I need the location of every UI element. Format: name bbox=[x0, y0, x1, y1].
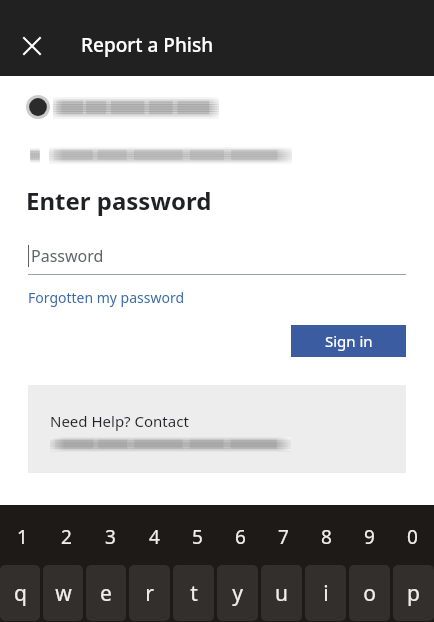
staticText: 6 bbox=[235, 524, 246, 550]
staticText: 5 bbox=[192, 524, 203, 550]
staticText: Sign in bbox=[325, 331, 373, 351]
staticText: 7 bbox=[278, 524, 289, 550]
button[interactable]: o bbox=[349, 565, 390, 621]
staticText: 9 bbox=[364, 524, 375, 550]
button[interactable]: p bbox=[393, 565, 434, 621]
button[interactable]: Sign in bbox=[291, 325, 406, 357]
button[interactable]: 9 bbox=[348, 509, 391, 565]
button[interactable]: 4 bbox=[132, 509, 176, 565]
staticText: 3 bbox=[105, 524, 116, 550]
staticText: p bbox=[407, 579, 420, 608]
staticText: Need Help? Contact bbox=[50, 411, 189, 431]
staticText: w bbox=[55, 579, 72, 608]
button[interactable]: 7 bbox=[262, 509, 305, 565]
staticText: 2 bbox=[61, 524, 72, 550]
button[interactable]: 6 bbox=[219, 509, 262, 565]
staticText: i bbox=[323, 579, 329, 608]
button[interactable]: 8 bbox=[305, 509, 348, 565]
button[interactable]: q bbox=[0, 565, 40, 621]
button[interactable]: 1 bbox=[0, 509, 44, 565]
button[interactable]: t bbox=[173, 565, 214, 621]
staticText: y bbox=[232, 579, 243, 608]
button[interactable]: 2 bbox=[44, 509, 88, 565]
staticText: Report a Phish bbox=[81, 32, 214, 58]
button[interactable]: y bbox=[217, 565, 258, 621]
button[interactable]: Forgotten my password bbox=[28, 288, 185, 307]
staticText: 0 bbox=[407, 524, 418, 550]
button[interactable]: 3 bbox=[88, 509, 132, 565]
staticText: Password bbox=[31, 245, 104, 267]
staticText: r bbox=[145, 579, 154, 608]
staticText: 1 bbox=[17, 524, 28, 550]
staticText: Forgotten my password bbox=[28, 288, 185, 307]
button[interactable]: 0 bbox=[391, 509, 434, 565]
button[interactable]: r bbox=[129, 565, 170, 621]
button[interactable]: Password bbox=[28, 237, 406, 275]
button[interactable]: 5 bbox=[176, 509, 219, 565]
button[interactable]: w bbox=[43, 565, 83, 621]
staticText: u bbox=[275, 579, 288, 608]
staticText: q bbox=[14, 579, 27, 608]
button[interactable]: Close bbox=[10, 24, 54, 68]
button[interactable]: i bbox=[305, 565, 346, 621]
staticText: 4 bbox=[149, 524, 160, 550]
staticText: Enter password bbox=[26, 184, 212, 217]
staticText: t bbox=[190, 579, 198, 608]
button[interactable]: e bbox=[86, 565, 126, 621]
staticText: 8 bbox=[321, 524, 332, 550]
staticText: e bbox=[100, 579, 112, 608]
staticText: o bbox=[363, 579, 376, 608]
button[interactable]: u bbox=[261, 565, 302, 621]
